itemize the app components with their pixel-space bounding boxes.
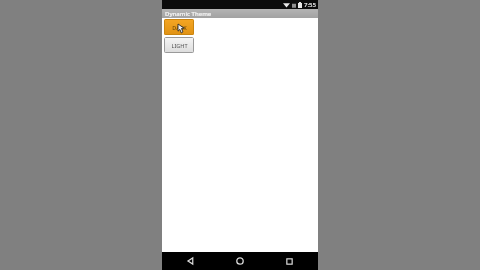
button[interactable]: Back [171, 252, 211, 270]
button[interactable]: DARK [164, 19, 194, 35]
button[interactable]: Home [220, 252, 260, 270]
button[interactable]: Recent apps [269, 252, 309, 270]
button[interactable]: LIGHT [164, 37, 194, 53]
staticText: 7:55 [304, 1, 316, 9]
staticText: LIGHT [171, 42, 188, 49]
staticText: DARK [172, 24, 187, 31]
staticText: Dynamic Theme [165, 10, 212, 18]
